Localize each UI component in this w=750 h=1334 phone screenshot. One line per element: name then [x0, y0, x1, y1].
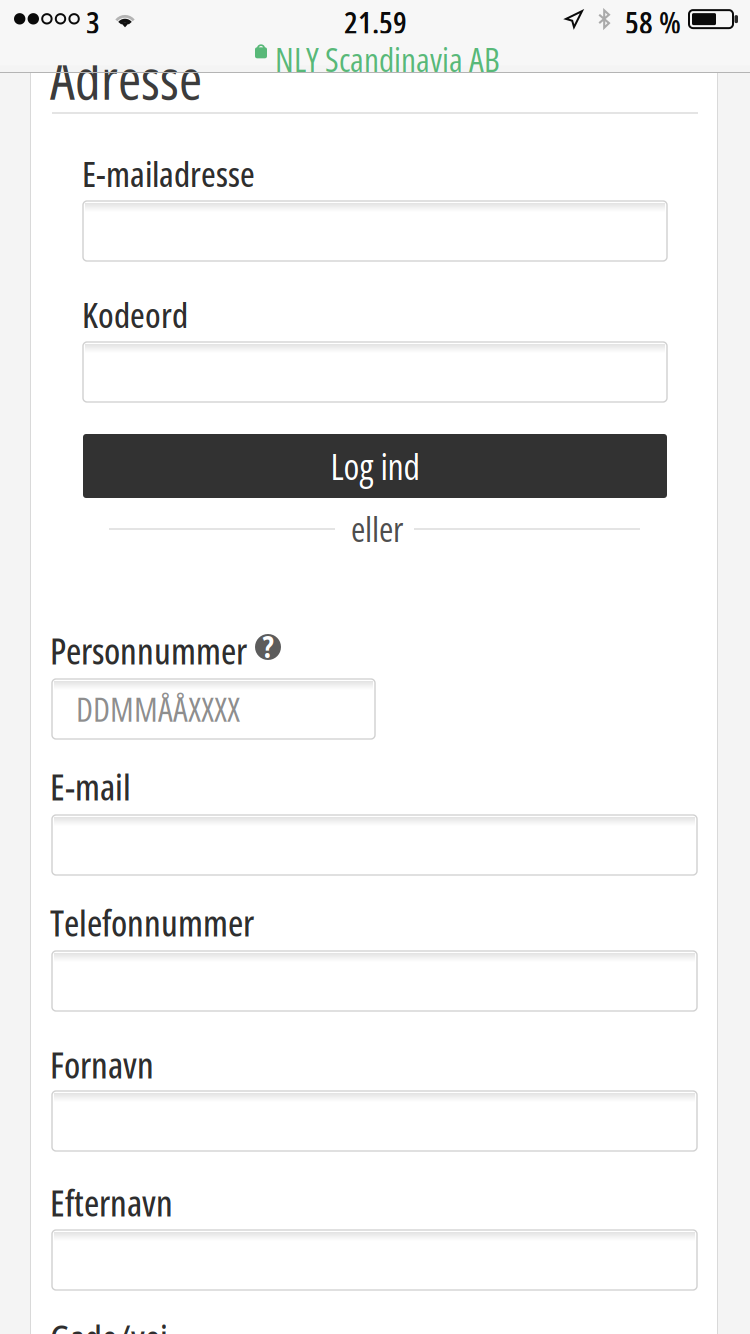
staticText: Log ind — [330, 441, 419, 490]
button[interactable]: Log ind — [83, 434, 667, 498]
staticText: 21.59 — [344, 1, 407, 43]
staticText: eller — [351, 505, 403, 552]
staticText: Adresse — [50, 40, 202, 116]
staticText: E-mail — [50, 762, 131, 811]
staticText: Fornavn — [50, 1040, 154, 1089]
staticText: Kodeord — [82, 291, 188, 338]
staticText: 3 — [86, 1, 100, 43]
staticText: Telefonnummer — [50, 898, 254, 947]
staticText: E-mailadresse — [82, 150, 255, 197]
staticText: Personnummer — [50, 626, 247, 675]
staticText: DDMMÅÅXXXX — [76, 686, 240, 731]
staticText: Efternavn — [50, 1178, 173, 1227]
staticText: NLY Scandinavia AB — [275, 36, 500, 82]
staticText: Gade/vej — [50, 1313, 168, 1334]
staticText: 58 % — [625, 1, 681, 43]
staticText: ? — [262, 625, 273, 667]
